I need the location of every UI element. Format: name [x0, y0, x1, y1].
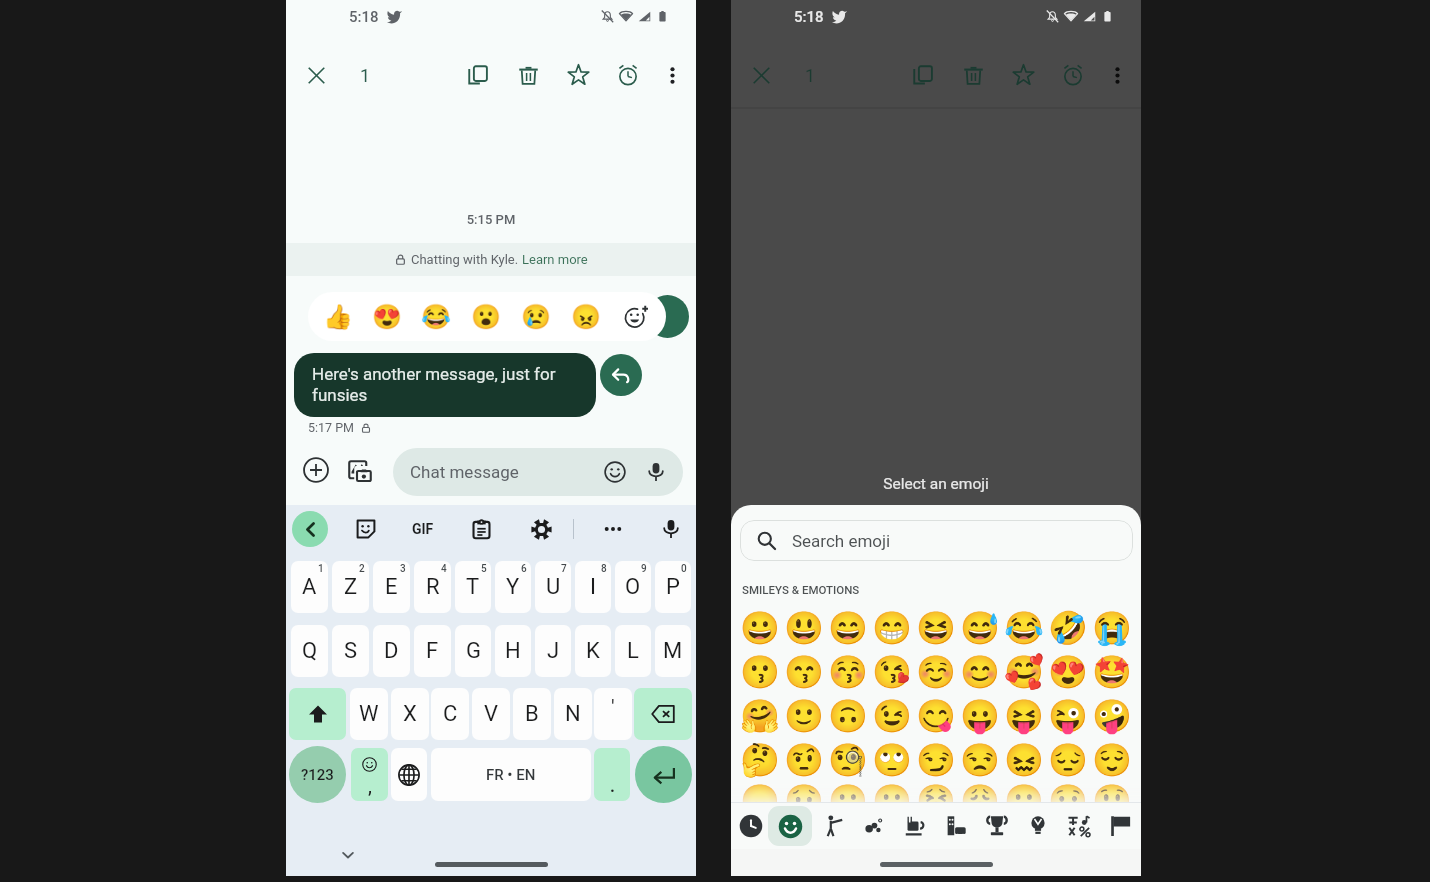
- button[interactable]: 😭: [1090, 606, 1134, 650]
- button[interactable]: Search emoji: [740, 520, 1133, 561]
- button[interactable]: Star: [556, 53, 600, 97]
- button[interactable]: 😂: [411, 292, 461, 341]
- button[interactable]: 😛: [958, 694, 1002, 738]
- button[interactable]: Remind: [606, 53, 650, 97]
- button[interactable]: 😢: [511, 292, 561, 341]
- button[interactable]: 😋: [914, 694, 958, 738]
- button[interactable]: 😩: [958, 782, 1002, 803]
- button[interactable]: 👍: [308, 292, 666, 341]
- button[interactable]: 😟: [782, 782, 826, 803]
- button[interactable]: 😫: [914, 782, 958, 803]
- button[interactable]: Chat message: [393, 448, 683, 496]
- button[interactable]: Objects: [1020, 808, 1056, 844]
- button[interactable]: 🤩: [1090, 650, 1134, 694]
- button[interactable]: 🙄: [870, 738, 914, 782]
- button[interactable]: 🙂: [782, 694, 826, 738]
- button[interactable]: Add: [295, 449, 337, 491]
- button[interactable]: 😉: [870, 694, 914, 738]
- button[interactable]: .: [594, 748, 630, 801]
- button[interactable]: 🤨: [782, 738, 826, 782]
- button[interactable]: 😖: [1002, 738, 1046, 782]
- button[interactable]: Symbols: [1061, 808, 1097, 844]
- button[interactable]: 😏: [914, 738, 958, 782]
- button[interactable]: L: [615, 625, 651, 677]
- button[interactable]: Copy: [901, 53, 945, 97]
- button[interactable]: Travel: [938, 808, 974, 844]
- button[interactable]: D: [373, 625, 410, 677]
- button[interactable]: Y: [495, 561, 531, 613]
- button[interactable]: 🤗: [738, 694, 782, 738]
- button[interactable]: X: [391, 688, 429, 740]
- button[interactable]: Q: [291, 625, 328, 677]
- button[interactable]: 😄: [826, 606, 870, 650]
- button[interactable]: 😊: [958, 650, 1002, 694]
- button[interactable]: Reply: [600, 354, 642, 396]
- button[interactable]: People: [815, 808, 851, 844]
- button[interactable]: GIF: [407, 513, 439, 545]
- button[interactable]: 😜: [1046, 694, 1090, 738]
- button[interactable]: Back: [292, 511, 328, 547]
- button[interactable]: Flags: [1102, 808, 1138, 844]
- button[interactable]: 🤣: [1046, 606, 1090, 650]
- button[interactable]: Z: [332, 561, 369, 613]
- button[interactable]: 😙: [782, 650, 826, 694]
- button[interactable]: U: [535, 561, 571, 613]
- button[interactable]: Language: [391, 748, 427, 801]
- button[interactable]: F: [414, 625, 451, 677]
- button[interactable]: 😁: [870, 606, 914, 650]
- button[interactable]: Stickers: [350, 513, 382, 545]
- button[interactable]: R: [414, 561, 451, 613]
- button[interactable]: Voice: [639, 455, 673, 489]
- button[interactable]: J: [535, 625, 571, 677]
- button[interactable]: Here's another message, just for funsies: [294, 353, 596, 417]
- button[interactable]: 😆: [914, 606, 958, 650]
- button[interactable]: C: [431, 688, 469, 740]
- button[interactable]: Smileys: [768, 806, 812, 846]
- button[interactable]: ': [594, 688, 632, 740]
- button[interactable]: 😞: [738, 782, 782, 803]
- button[interactable]: 😝: [1002, 694, 1046, 738]
- button[interactable]: Copy: [456, 53, 500, 97]
- button[interactable]: 😮: [461, 292, 511, 341]
- button[interactable]: N: [554, 688, 592, 740]
- button[interactable]: O: [615, 561, 651, 613]
- button[interactable]: A: [291, 561, 328, 613]
- button[interactable]: S: [332, 625, 369, 677]
- button[interactable]: 😲: [1090, 782, 1134, 803]
- button[interactable]: 😃: [782, 606, 826, 650]
- button[interactable]: Enter: [635, 746, 692, 803]
- button[interactable]: Settings: [525, 513, 557, 545]
- button[interactable]: W: [350, 688, 388, 740]
- button[interactable]: Activities: [979, 808, 1015, 844]
- button[interactable]: Delete: [506, 53, 550, 97]
- button[interactable]: Delete: [951, 53, 995, 97]
- button[interactable]: H: [495, 625, 531, 677]
- button[interactable]: FR • EN: [431, 748, 591, 801]
- button[interactable]: 🙁: [826, 782, 870, 803]
- button[interactable]: ☹️: [870, 782, 914, 803]
- button[interactable]: 😍: [1046, 650, 1090, 694]
- button[interactable]: ☺️: [914, 650, 958, 694]
- button[interactable]: 😌: [1090, 738, 1134, 782]
- button[interactable]: I: [575, 561, 611, 613]
- button[interactable]: Food: [897, 808, 933, 844]
- button[interactable]: Close: [739, 53, 783, 97]
- button[interactable]: Backspace: [634, 688, 692, 740]
- button[interactable]: T: [455, 561, 491, 613]
- button[interactable]: 👍: [313, 292, 362, 341]
- button[interactable]: M: [655, 625, 691, 677]
- button[interactable]: 😠: [561, 292, 611, 341]
- button[interactable]: More: [597, 513, 629, 545]
- button[interactable]: 🤪: [1090, 694, 1134, 738]
- button[interactable]: Remind: [1051, 53, 1095, 97]
- button[interactable]: 🙃: [826, 694, 870, 738]
- button[interactable]: 😯: [1046, 782, 1090, 803]
- button[interactable]: More options: [1095, 53, 1139, 97]
- button[interactable]: Close: [294, 53, 338, 97]
- button[interactable]: P: [655, 561, 691, 613]
- button[interactable]: B: [513, 688, 551, 740]
- button[interactable]: 🤔: [738, 738, 782, 782]
- button[interactable]: 😘: [870, 650, 914, 694]
- button[interactable]: Hide keyboard: [336, 843, 360, 867]
- button[interactable]: Star: [1001, 53, 1045, 97]
